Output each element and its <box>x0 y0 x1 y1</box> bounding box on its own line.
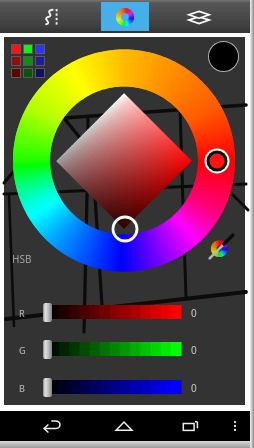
button[interactable]: G <box>4 340 245 360</box>
button[interactable]: R <box>4 303 245 323</box>
staticText: R <box>19 307 25 319</box>
button[interactable]: Recent apps <box>166 411 214 441</box>
button[interactable]: Home <box>96 411 152 441</box>
button[interactable]: More options <box>222 411 248 441</box>
button[interactable]: Colour mode <box>207 233 235 261</box>
staticText: B <box>19 382 25 394</box>
button[interactable]: Current colour <box>209 42 238 71</box>
staticText: 0 <box>191 343 197 357</box>
staticText: G <box>19 344 26 356</box>
button[interactable]: Layers <box>162 0 236 33</box>
staticText: 0 <box>191 306 197 320</box>
button[interactable]: B <box>4 378 245 398</box>
button[interactable]: Back <box>24 411 80 441</box>
button[interactable]: Symmetry <box>14 0 88 33</box>
button[interactable]: Colour picker <box>101 2 149 31</box>
button[interactable]: HSB <box>12 252 32 266</box>
staticText: 0 <box>191 381 197 395</box>
